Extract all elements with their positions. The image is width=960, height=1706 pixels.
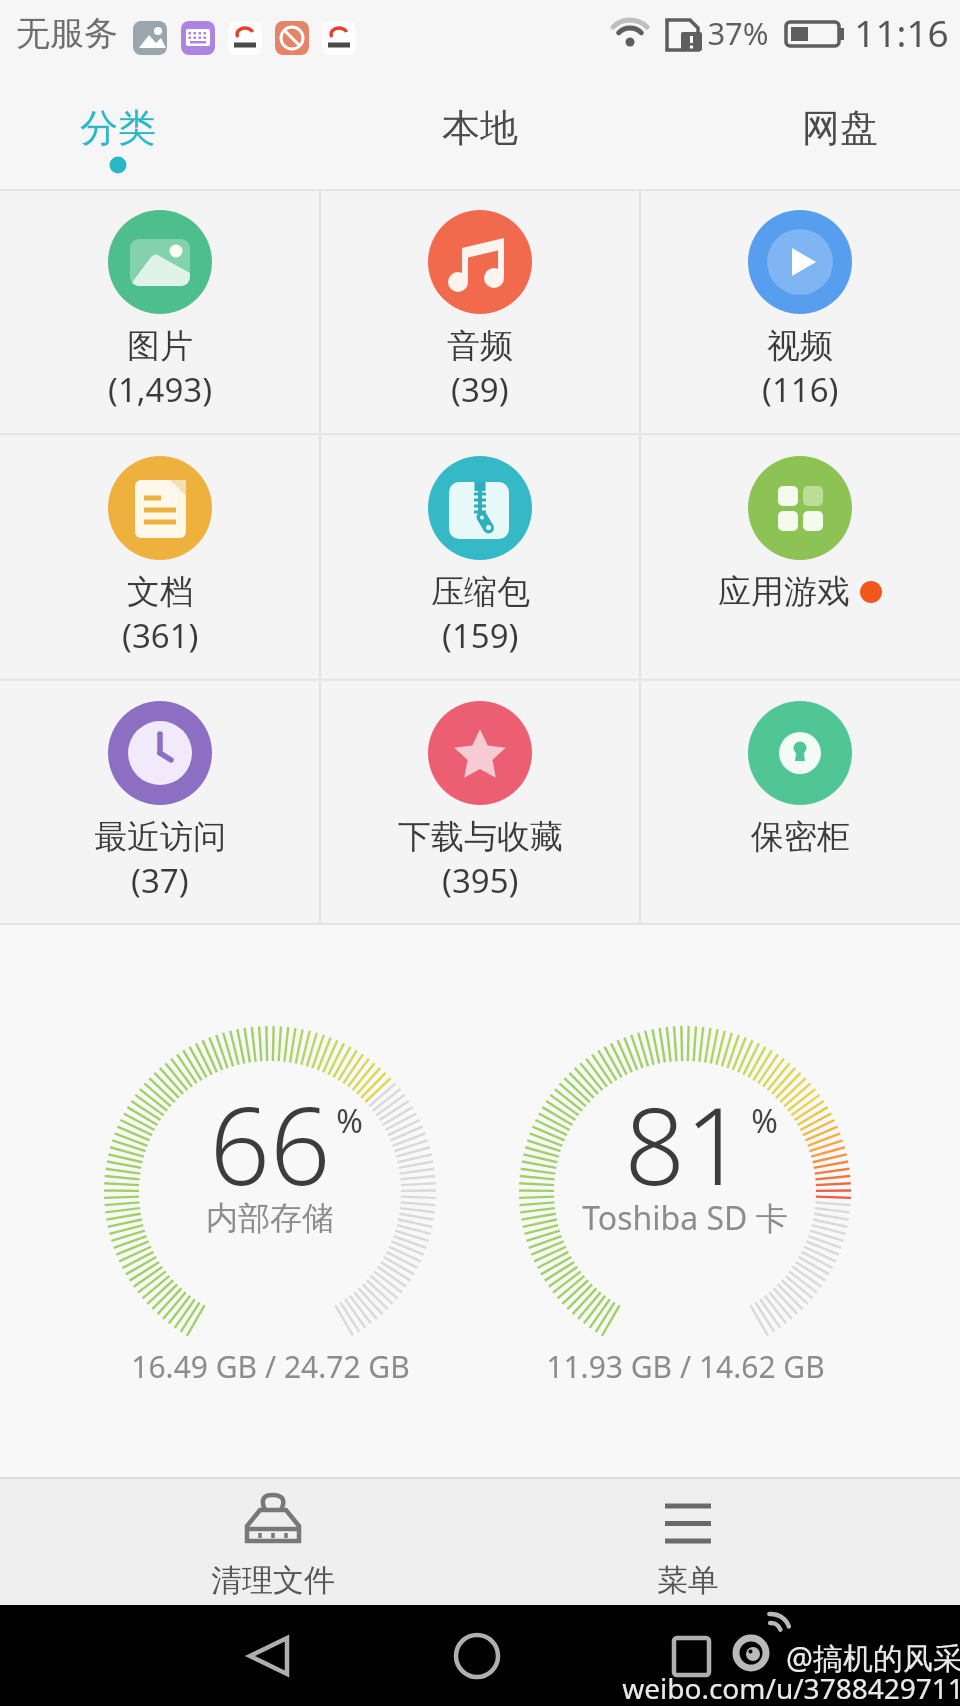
staticText: 66: [209, 1072, 331, 1216]
staticText: 分类: [80, 104, 156, 152]
button[interactable]: 本地: [410, 90, 550, 165]
button[interactable]: 压缩包: [320, 435, 640, 680]
staticText: %: [751, 1099, 778, 1143]
button[interactable]: 分类: [48, 90, 188, 165]
staticText: 16.49 GB / 24.72 GB: [131, 1346, 410, 1387]
staticText: 81: [624, 1072, 746, 1216]
staticText: 无服务: [16, 12, 118, 55]
staticText: (1,493): [108, 367, 213, 412]
button[interactable]: 菜单: [598, 1481, 778, 1601]
button[interactable]: [430, 1615, 524, 1697]
button[interactable]: 图片: [0, 189, 320, 435]
staticText: (395): [442, 858, 519, 903]
staticText: Toshiba SD 卡: [582, 1196, 788, 1240]
button[interactable]: [644, 1615, 738, 1697]
staticText: 清理文件: [211, 1561, 335, 1600]
staticText: 图片: [127, 325, 193, 367]
staticText: 压缩包: [431, 571, 530, 613]
button[interactable]: 文档: [0, 435, 320, 680]
staticText: (361): [122, 613, 199, 658]
button[interactable]: 音频: [320, 189, 640, 435]
button[interactable]: 清理文件: [173, 1481, 373, 1601]
staticText: 视频: [767, 325, 833, 367]
staticText: 应用游戏: [718, 571, 850, 613]
button[interactable]: 网盘: [770, 90, 910, 165]
staticText: 11.93 GB / 14.62 GB: [546, 1346, 825, 1387]
staticText: (37): [131, 858, 189, 903]
staticText: 内部存储: [206, 1198, 334, 1238]
button[interactable]: 视频: [640, 189, 960, 435]
staticText: 保密柜: [751, 816, 850, 858]
staticText: (159): [442, 613, 519, 658]
staticText: 文档: [127, 571, 193, 613]
staticText: 网盘: [802, 104, 878, 152]
staticText: 菜单: [657, 1561, 719, 1600]
button[interactable]: [220, 1615, 314, 1697]
button[interactable]: 应用游戏: [640, 435, 960, 680]
staticText: (116): [762, 367, 839, 412]
staticText: (39): [451, 367, 509, 412]
staticText: 11:16: [854, 7, 949, 57]
button[interactable]: 最近访问: [0, 680, 320, 925]
staticText: weibo.com/u/3788429711: [622, 1669, 960, 1705]
staticText: %: [336, 1099, 363, 1143]
button[interactable]: 下载与收藏: [320, 680, 640, 925]
staticText: 下载与收藏: [398, 816, 563, 858]
staticText: 37%: [707, 12, 769, 54]
staticText: 音频: [447, 325, 513, 367]
staticText: 本地: [442, 104, 518, 152]
staticText: 最近访问: [94, 816, 226, 858]
button[interactable]: 保密柜: [640, 680, 960, 925]
staticText: @搞机的风采: [786, 1637, 960, 1678]
